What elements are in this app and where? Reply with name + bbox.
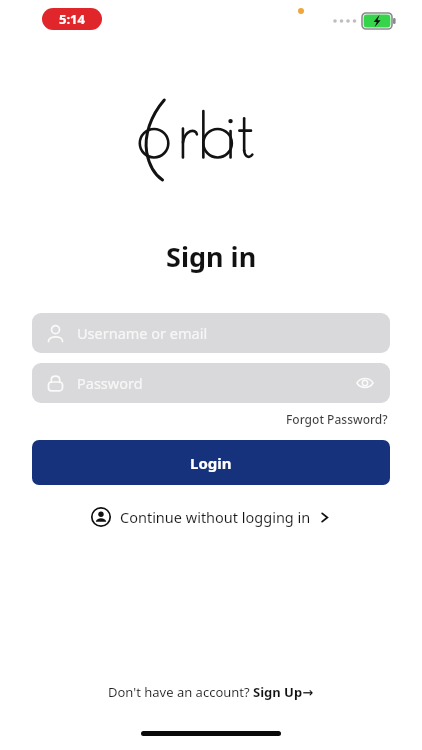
button[interactable]: Forgot Password?	[284, 409, 390, 429]
other: Username	[46, 324, 65, 343]
button[interactable]: Continue without logging in	[83, 502, 339, 532]
other: Password	[46, 374, 65, 393]
button[interactable]: Password	[32, 363, 390, 403]
button[interactable]: Don't have an account? Sign Up→	[102, 679, 320, 705]
staticText: Forgot Password?	[286, 411, 388, 427]
button[interactable]: Show password	[354, 372, 376, 394]
staticText: Password	[77, 373, 143, 393]
staticText: Login	[190, 453, 232, 473]
button[interactable]: Login	[32, 440, 390, 485]
staticText: Don't have an account? Sign Up→	[108, 683, 314, 701]
button[interactable]: Username	[32, 313, 390, 353]
staticText: Continue without logging in	[120, 507, 311, 527]
staticText: Sign in	[166, 238, 257, 275]
staticText: Username or email	[77, 323, 208, 343]
staticText: 5:14	[59, 10, 85, 28]
